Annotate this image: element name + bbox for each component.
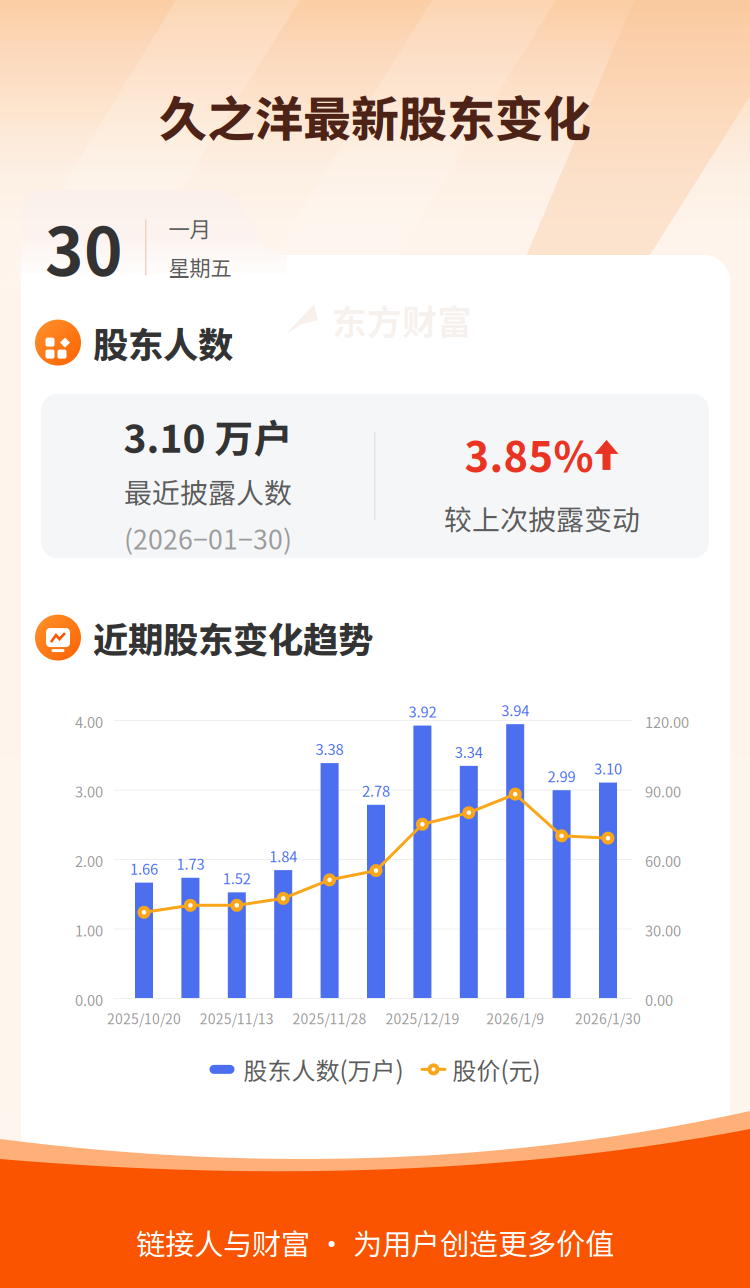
staticText: 30 [45, 200, 123, 295]
staticText: 3.10 万户 [123, 408, 292, 464]
staticText: 3.94 [501, 699, 529, 720]
staticText: 2026/1/9 [486, 1008, 544, 1028]
staticText: 60.00 [645, 850, 681, 871]
staticText: 120.00 [645, 711, 689, 732]
staticText: 3.10 [594, 757, 622, 779]
staticText: 久之洋最新股东变化 [159, 81, 591, 150]
staticText: 90.00 [645, 780, 681, 802]
staticText: 星期五 [168, 251, 231, 282]
staticText: 3.34 [455, 741, 483, 762]
staticText: 2025/10/20 [107, 1008, 181, 1028]
staticText: 股东人数(万户) [243, 1052, 403, 1087]
staticText: 0.00 [645, 989, 673, 1010]
staticText: 一月 [168, 212, 210, 243]
staticText: 2026/1/30 [575, 1008, 641, 1028]
staticText: 30.00 [645, 919, 681, 941]
staticText: 2025/11/13 [200, 1008, 274, 1028]
staticText: 1.00 [75, 919, 103, 941]
staticText: 4.00 [75, 711, 103, 732]
staticText: 0.00 [75, 989, 103, 1010]
staticText: 近期股东变化趋势 [93, 612, 373, 663]
staticText: 3.00 [75, 780, 103, 802]
staticText: 3.92 [408, 701, 436, 722]
staticText: 最近披露人数 [124, 471, 292, 511]
staticText: 2025/12/19 [385, 1008, 459, 1028]
staticText: 3.38 [316, 738, 344, 759]
staticText: (2026−01−30) [124, 518, 292, 557]
staticText: 1.84 [269, 845, 297, 866]
staticText: 1.52 [223, 867, 251, 889]
staticText: 较上次披露变动 [444, 498, 640, 538]
staticText: 3.85% [464, 424, 593, 484]
staticText: 2.00 [75, 850, 103, 871]
staticText: 东方财富 [332, 295, 472, 345]
staticText: 2.99 [548, 765, 576, 786]
staticText: 1.66 [130, 858, 158, 879]
staticText: 股价(元) [452, 1052, 540, 1087]
staticText: 1.73 [176, 853, 204, 874]
staticText: 2025/11/28 [293, 1008, 367, 1028]
staticText: 链接人与财富 · 为用户创造更多价值 [136, 1221, 614, 1263]
staticText: 2.78 [362, 780, 390, 801]
staticText: 股东人数 [93, 317, 233, 368]
